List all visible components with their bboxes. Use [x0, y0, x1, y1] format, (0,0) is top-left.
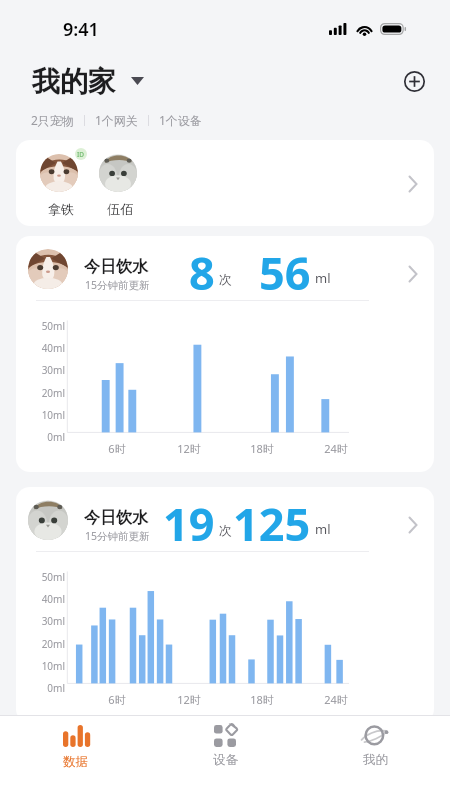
staticText: 18时 [242, 692, 282, 707]
staticText: 我的 [363, 752, 388, 768]
button[interactable]: 数据 [0, 716, 150, 800]
button[interactable]: 我的 [300, 716, 450, 800]
staticText: 12时 [169, 441, 209, 456]
staticText: 次 [219, 522, 232, 538]
staticText: 2只宠物 [31, 112, 74, 128]
staticText: 125 [233, 493, 311, 544]
staticText: 10ml [16, 659, 65, 673]
staticText: 设备 [213, 752, 238, 768]
staticText: 20ml [16, 386, 65, 400]
staticText: 次 [219, 271, 232, 287]
button[interactable]: ID [16, 140, 434, 226]
staticText: 1个网关 [95, 112, 138, 128]
staticText: 我的家 [32, 64, 116, 99]
staticText: 15分钟前更新 [85, 278, 150, 292]
staticText: 伍佰 [90, 201, 150, 217]
staticText: 30ml [16, 363, 65, 377]
staticText: 50ml [16, 319, 65, 333]
staticText: ml [315, 520, 331, 538]
staticText: 拿铁 [31, 201, 91, 217]
staticText: 24时 [316, 692, 356, 707]
staticText: 1个设备 [159, 112, 202, 128]
staticText: 40ml [16, 341, 65, 355]
button[interactable]: 今日饮水 [16, 236, 434, 472]
button[interactable]: Switch home [124, 68, 150, 94]
staticText: 数据 [63, 754, 88, 770]
button[interactable]: 今日饮水 [16, 487, 434, 723]
staticText: 40ml [16, 592, 65, 606]
staticText: 今日饮水 [84, 257, 148, 277]
staticText: 50ml [16, 570, 65, 584]
staticText: 24时 [316, 441, 356, 456]
staticText: 20ml [16, 637, 65, 651]
staticText: 18时 [242, 441, 282, 456]
staticText: 0ml [16, 681, 65, 695]
staticText: 9:41 [63, 17, 99, 42]
staticText: 12时 [169, 692, 209, 707]
staticText: 今日饮水 [84, 508, 148, 528]
staticText: ml [315, 269, 331, 287]
staticText: 8 [189, 242, 215, 293]
staticText: 0ml [16, 430, 65, 444]
staticText: 15分钟前更新 [85, 529, 150, 543]
staticText: 56 [259, 242, 311, 293]
staticText: 30ml [16, 614, 65, 628]
staticText: 6时 [97, 441, 137, 456]
staticText: 10ml [16, 408, 65, 422]
staticText: 6时 [97, 692, 137, 707]
staticText: ID [77, 150, 85, 159]
staticText: 19 [163, 493, 215, 544]
button[interactable]: Add device [397, 64, 431, 98]
button[interactable]: 设备 [150, 716, 300, 800]
